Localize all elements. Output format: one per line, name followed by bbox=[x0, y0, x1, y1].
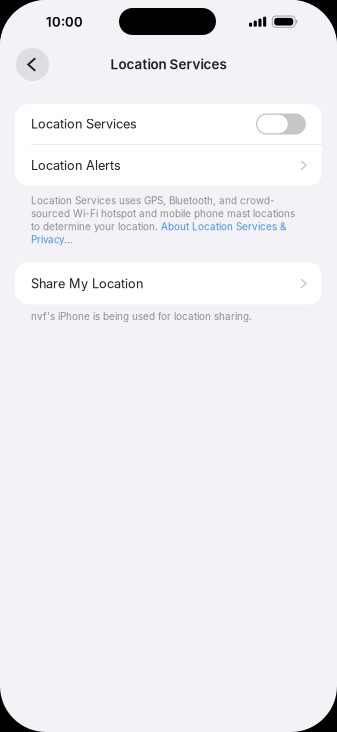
button[interactable]: Back bbox=[16, 48, 49, 81]
button[interactable]: Location Services bbox=[15, 104, 322, 144]
staticText: sourced Wi-Fi hotspot and mobile phone m… bbox=[31, 208, 295, 220]
staticText: Location Services bbox=[31, 116, 137, 132]
staticText: About Location Services & bbox=[161, 221, 286, 233]
staticText: Location Alerts bbox=[31, 158, 121, 173]
staticText: to determine your location. bbox=[31, 221, 161, 233]
button[interactable]: Share My Location bbox=[15, 263, 322, 305]
button[interactable]: Location Alerts bbox=[15, 145, 322, 186]
staticText: Location Services uses GPS, Bluetooth, a… bbox=[31, 195, 275, 207]
staticText: Location Services bbox=[110, 56, 226, 72]
staticText: Share My Location bbox=[31, 276, 143, 291]
staticText: Privacy... bbox=[31, 234, 73, 245]
staticText: nvf's iPhone is being used for location … bbox=[31, 311, 252, 322]
staticText: 10:00 bbox=[46, 14, 83, 30]
